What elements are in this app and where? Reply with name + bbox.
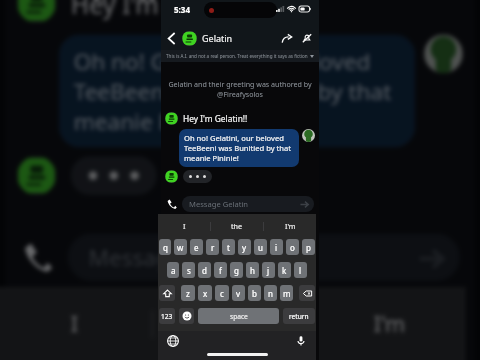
staticText: s: [187, 265, 191, 276]
staticText: j: [267, 265, 270, 276]
button[interactable]: space: [198, 308, 279, 324]
button[interactable]: p: [302, 239, 315, 255]
button[interactable]: l: [294, 262, 307, 278]
button[interactable]: v: [232, 285, 245, 301]
button[interactable]: the: [211, 214, 263, 238]
staticText: I'm: [285, 221, 296, 231]
button[interactable]: Oh no! Gelatini, our beloved TeeBeeni wa…: [59, 34, 415, 147]
button[interactable]: Message Gelatin: [182, 196, 314, 212]
button[interactable]: Share: [280, 31, 294, 45]
staticText: z: [186, 288, 190, 299]
button[interactable]: a: [167, 262, 179, 278]
staticText: e: [194, 242, 199, 253]
staticText: the: [231, 221, 243, 231]
button[interactable]: g: [230, 262, 243, 278]
button[interactable]: s: [182, 262, 195, 278]
button[interactable]: Call: [14, 233, 62, 281]
button[interactable]: return: [283, 308, 315, 324]
staticText: h: [250, 265, 255, 276]
button[interactable]: n: [264, 285, 277, 301]
button[interactable]: w: [174, 239, 187, 255]
button[interactable]: y: [238, 239, 251, 255]
staticText: r: [211, 242, 215, 253]
button[interactable]: Backspace: [299, 285, 315, 301]
staticText: Message Gelatin: [189, 199, 249, 209]
staticText: p: [306, 242, 311, 253]
button[interactable]: j: [262, 262, 275, 278]
staticText: y: [242, 242, 247, 253]
staticText: q: [163, 242, 168, 253]
staticText: o: [290, 242, 295, 253]
button[interactable]: Back: [163, 30, 179, 46]
button[interactable]: Mute notifications: [300, 31, 314, 45]
staticText: space: [230, 312, 248, 321]
staticText: k: [282, 265, 287, 276]
button[interactable]: f: [214, 262, 227, 278]
button[interactable]: I: [158, 214, 210, 238]
staticText: the: [213, 308, 249, 337]
staticText: g: [234, 265, 239, 276]
staticText: n: [268, 288, 273, 299]
button[interactable]: I'm: [264, 214, 316, 238]
staticText: 5:34: [174, 4, 190, 15]
button[interactable]: I'm: [311, 287, 466, 358]
staticText: f: [219, 265, 222, 276]
staticText: t: [227, 242, 230, 253]
staticText: Oh no! Gelatini, our beloved TeeBeeni wa…: [74, 46, 400, 135]
staticText: Hey I'm Gelatin!!: [71, 0, 264, 20]
button[interactable]: the: [154, 287, 308, 358]
staticText: x: [203, 288, 208, 299]
button[interactable]: Message Gelatin: [68, 233, 460, 281]
button[interactable]: i: [270, 239, 283, 255]
button[interactable]: o: [286, 239, 299, 255]
button[interactable]: Voice input: [295, 335, 307, 347]
staticText: Oh no! Gelatini, our beloved TeeBeeni wa…: [184, 133, 294, 163]
button[interactable]: t: [222, 239, 235, 255]
staticText: Gelatin: [202, 32, 233, 44]
button[interactable]: d: [198, 262, 211, 278]
staticText: I'm: [374, 308, 406, 337]
button[interactable]: r: [206, 239, 219, 255]
staticText: d: [202, 265, 207, 276]
staticText: This is A.I. and not a real person. Trea…: [166, 53, 308, 59]
staticText: 123: [161, 312, 173, 321]
staticText: return: [289, 312, 309, 321]
button[interactable]: u: [254, 239, 267, 255]
button[interactable]: Change language: [167, 335, 179, 347]
button[interactable]: Call: [164, 196, 180, 212]
staticText: m: [283, 288, 291, 299]
button[interactable]: e: [190, 239, 203, 255]
staticText: I: [71, 308, 80, 337]
button[interactable]: k: [278, 262, 291, 278]
staticText: w: [177, 242, 184, 253]
staticText: Message Gelatin: [88, 242, 267, 272]
staticText: c: [220, 288, 224, 299]
staticText: v: [236, 288, 241, 299]
staticText: I: [183, 221, 186, 231]
staticText: i: [275, 242, 278, 253]
staticText: Gelatin and their greeting was authored …: [165, 79, 315, 99]
button[interactable]: Oh no! Gelatini, our beloved TeeBeeni wa…: [179, 129, 299, 167]
staticText: l: [299, 265, 302, 276]
button[interactable]: q: [159, 239, 171, 255]
button[interactable]: z: [181, 285, 195, 301]
staticText: b: [252, 288, 257, 299]
button[interactable]: 123: [159, 308, 175, 324]
button[interactable]: Shift: [159, 285, 175, 301]
staticText: a: [171, 265, 176, 276]
button[interactable]: c: [215, 285, 229, 301]
button[interactable]: Emoji: [179, 308, 194, 324]
button[interactable]: b: [248, 285, 261, 301]
button[interactable]: h: [246, 262, 259, 278]
button[interactable]: m: [280, 285, 293, 301]
button[interactable]: x: [198, 285, 212, 301]
staticText: u: [258, 242, 263, 253]
staticText: Hey I'm Gelatin!!: [183, 113, 248, 124]
